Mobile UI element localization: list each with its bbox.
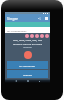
other: Back — [15, 80, 17, 82]
other: Track 3 — [35, 34, 39, 38]
other: Track 5 — [45, 34, 49, 38]
other: Track 1 — [25, 34, 29, 38]
staticText: 00:00:00 — [5, 46, 50, 49]
other: Share — [38, 17, 41, 20]
button[interactable]: My recordings — [7, 61, 48, 69]
staticText: My Compositions — [7, 29, 27, 32]
staticText: Settings — [23, 73, 33, 76]
button[interactable]: Settings — [7, 70, 48, 78]
staticText: My recordings — [19, 64, 36, 67]
staticText: buttons control the track — [5, 42, 50, 45]
staticText: Play, Stop, Save, Rec, Mix — [5, 38, 50, 41]
other: Track 4 — [40, 34, 44, 38]
other: Record — [24, 51, 32, 59]
staticText: Singer — [7, 16, 19, 21]
other: Track 2 — [30, 34, 34, 38]
